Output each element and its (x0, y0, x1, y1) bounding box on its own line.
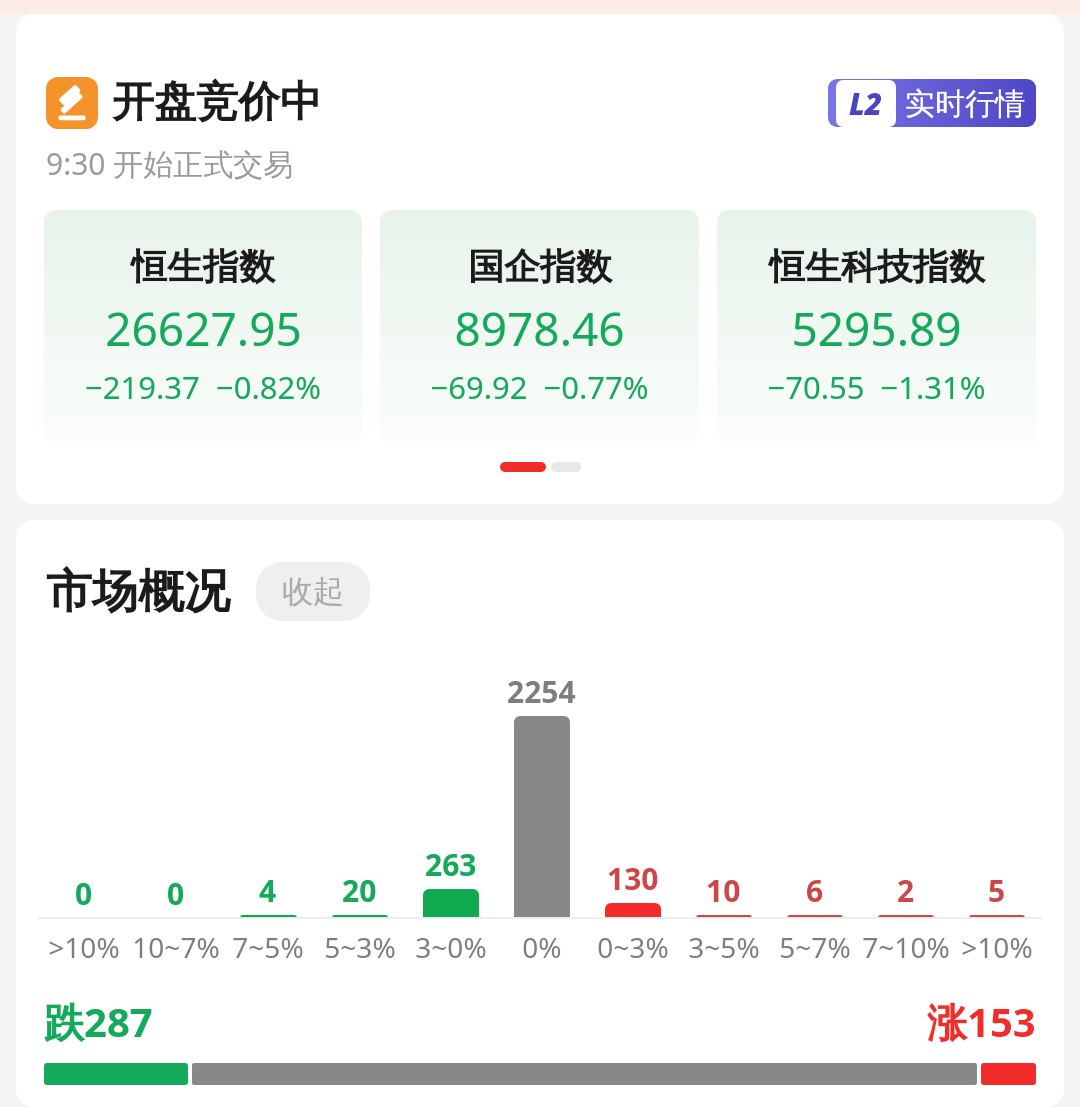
staticText: 263 (425, 844, 477, 885)
staticText: 0% (522, 928, 562, 966)
staticText: 26627.95 (105, 297, 302, 360)
staticText: 收起 (282, 572, 344, 611)
staticText: 7~5% (232, 928, 304, 966)
staticText: 国企指数 (468, 244, 612, 289)
staticText: 5~3% (324, 928, 396, 966)
button[interactable]: 国企指数 (380, 210, 699, 442)
staticText: 130 (607, 858, 659, 899)
staticText: 4 (259, 870, 277, 911)
staticText: 实时行情 (905, 85, 1025, 123)
staticText: 8978.46 (454, 297, 625, 360)
button[interactable]: L2 (828, 79, 1036, 127)
staticText: 9:30 开始正式交易 (46, 143, 294, 184)
other: 开盘竞价 (46, 77, 98, 129)
staticText: 恒生科技指数 (769, 244, 985, 289)
staticText: L2 (849, 83, 883, 124)
staticText: 市场概况 (46, 563, 230, 621)
staticText: 5~7% (779, 928, 851, 966)
staticText: 0~3% (597, 928, 669, 966)
button[interactable]: 恒生科技指数 (717, 210, 1036, 442)
staticText: 0 (75, 873, 93, 914)
staticText: 跌287 (44, 994, 153, 1049)
staticText: 恒生指数 (131, 244, 275, 289)
staticText: 2 (897, 870, 915, 911)
staticText: 6 (806, 870, 824, 911)
staticText: 5295.89 (791, 297, 962, 360)
staticText: 3~0% (415, 928, 487, 966)
staticText: >10% (961, 928, 1033, 966)
staticText: −70.55 −1.31% (767, 366, 986, 408)
staticText: 7~10% (862, 928, 950, 966)
staticText: 2254 (507, 671, 576, 712)
staticText: 20 (342, 870, 377, 911)
staticText: 10 (706, 870, 741, 911)
button[interactable]: 收起 (256, 562, 370, 621)
staticText: −219.37 −0.82% (85, 366, 321, 408)
staticText: 涨153 (927, 994, 1036, 1049)
staticText: >10% (48, 928, 120, 966)
staticText: 3~5% (688, 928, 760, 966)
staticText: 0 (167, 873, 185, 914)
staticText: 开盘竞价中 (112, 76, 322, 129)
staticText: 10~7% (132, 928, 220, 966)
staticText: −69.92 −0.77% (430, 366, 649, 408)
button[interactable]: 恒生指数 (44, 210, 362, 442)
staticText: 5 (988, 870, 1006, 911)
